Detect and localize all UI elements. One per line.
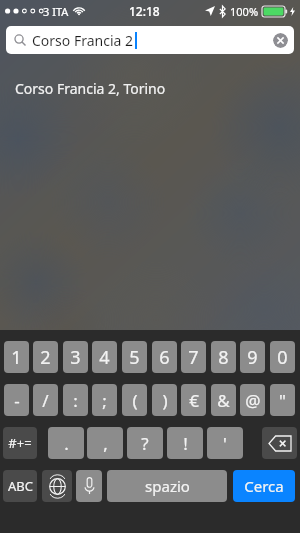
- staticText: ?: [141, 432, 149, 455]
- button[interactable]: 0: [270, 341, 295, 373]
- staticText: &: [217, 389, 230, 412]
- staticText: !: [183, 432, 188, 455]
- button[interactable]: @: [240, 384, 265, 416]
- button[interactable]: 3: [63, 341, 88, 373]
- button[interactable]: 1: [4, 341, 29, 373]
- button[interactable]: spazio: [107, 470, 227, 502]
- staticText: ;: [102, 389, 107, 412]
- button[interactable]: €: [181, 384, 206, 416]
- staticText: spazio: [145, 476, 190, 496]
- staticText: 100%: [230, 4, 259, 19]
- staticText: ABC: [8, 477, 33, 495]
- button[interactable]: Clear text: [273, 33, 288, 48]
- staticText: Cerca: [244, 476, 284, 496]
- button[interactable]: :: [63, 384, 88, 416]
- staticText: #+=: [8, 434, 32, 452]
- staticText: 12:18: [129, 3, 160, 19]
- button[interactable]: !: [167, 427, 203, 459]
- button[interactable]: ;: [92, 384, 117, 416]
- button[interactable]: (: [122, 384, 147, 416]
- button[interactable]: ): [152, 384, 177, 416]
- button[interactable]: ?: [127, 427, 163, 459]
- staticText: ": [279, 389, 286, 412]
- staticText: 4: [99, 345, 110, 370]
- button[interactable]: -: [4, 384, 29, 416]
- button[interactable]: Corso Francia 2: [6, 26, 294, 54]
- staticText: (: [132, 389, 138, 412]
- staticText: ): [162, 389, 168, 412]
- staticText: 3 ITA: [43, 4, 69, 19]
- button[interactable]: 8: [211, 341, 236, 373]
- button[interactable]: Corso Francia 2, Torino: [0, 74, 300, 102]
- staticText: @: [245, 389, 261, 412]
- button[interactable]: key: [76, 470, 102, 502]
- button[interactable]: 7: [181, 341, 206, 373]
- staticText: 9: [247, 345, 258, 370]
- button[interactable]: ,: [87, 427, 123, 459]
- button[interactable]: &: [211, 384, 236, 416]
- staticText: /: [42, 389, 49, 412]
- other: Backspace: [269, 436, 291, 451]
- other: Change keyboard: [49, 478, 66, 495]
- button[interactable]: #+=: [3, 427, 37, 459]
- staticText: 3: [70, 345, 81, 370]
- button[interactable]: /: [33, 384, 58, 416]
- button[interactable]: ": [270, 384, 295, 416]
- staticText: ,: [103, 432, 108, 455]
- staticText: ': [223, 432, 227, 455]
- button[interactable]: 2: [33, 341, 58, 373]
- staticText: .: [64, 432, 69, 455]
- staticText: Corso Francia 2: [32, 31, 134, 50]
- button[interactable]: 6: [152, 341, 177, 373]
- staticText: 5: [129, 345, 140, 370]
- button[interactable]: key: [42, 470, 72, 502]
- button[interactable]: key: [262, 427, 297, 459]
- button[interactable]: ABC: [3, 470, 37, 502]
- button[interactable]: ': [207, 427, 243, 459]
- staticText: Corso Francia 2, Torino: [15, 79, 166, 98]
- button[interactable]: .: [48, 427, 84, 459]
- staticText: 1: [11, 345, 22, 370]
- staticText: 6: [159, 345, 170, 370]
- staticText: 0: [277, 345, 288, 370]
- staticText: €: [189, 389, 199, 412]
- staticText: 2: [40, 345, 51, 370]
- staticText: -: [14, 389, 20, 412]
- button[interactable]: 9: [240, 341, 265, 373]
- other: Dictation: [84, 477, 95, 495]
- staticText: :: [73, 389, 78, 412]
- button[interactable]: Cerca: [233, 470, 295, 502]
- staticText: 8: [218, 345, 229, 370]
- button[interactable]: 5: [122, 341, 147, 373]
- staticText: 7: [188, 345, 199, 370]
- button[interactable]: 4: [92, 341, 117, 373]
